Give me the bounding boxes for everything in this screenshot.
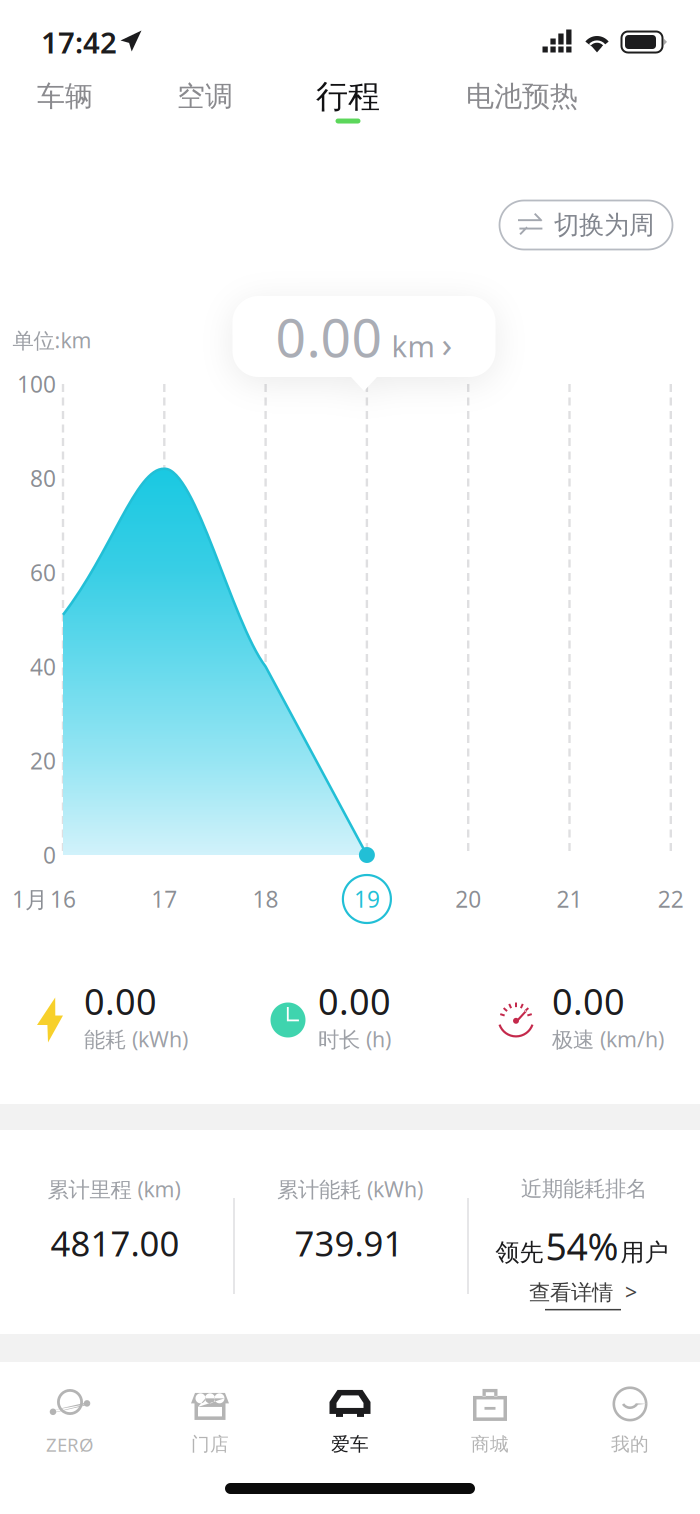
staticText: 爱车 (331, 1433, 369, 1456)
staticText: 20 (30, 746, 56, 776)
staticText: 20 (455, 884, 481, 914)
staticText: 累计能耗 (kWh) (277, 1175, 423, 1203)
button[interactable]: 车辆 (25, 74, 105, 133)
staticText: 0.00 (552, 977, 625, 1025)
staticText: 0 (43, 840, 56, 870)
button[interactable]: 爱车 (280, 1379, 420, 1460)
staticText: 领先 (495, 1238, 543, 1267)
staticText: 能耗 (kWh) (84, 1025, 188, 1053)
staticText: 19 (354, 884, 380, 914)
staticText: 极速 (km/h) (552, 1025, 664, 1053)
staticText: 门店 (191, 1433, 229, 1456)
staticText: 40 (30, 651, 56, 682)
staticText: 18 (253, 884, 279, 914)
staticText: km (391, 326, 434, 365)
staticText: 查看详情 > (529, 1278, 637, 1306)
staticText: 60 (30, 557, 56, 587)
staticText: 4817.00 (50, 1220, 179, 1266)
staticText: 切换为周 (554, 209, 654, 240)
staticText: 时长 (h) (318, 1025, 391, 1053)
staticText: ZERØ (46, 1432, 94, 1457)
staticText: 商城 (471, 1433, 509, 1456)
staticText: 1月 (12, 884, 48, 914)
button[interactable]: 行程 (304, 74, 392, 133)
button[interactable]: 空调 (165, 74, 245, 133)
button[interactable]: 门店 (140, 1379, 280, 1460)
staticText: 16 (50, 884, 76, 914)
staticText: 车辆 (37, 79, 93, 114)
staticText: 空调 (177, 79, 233, 114)
staticText: 累计里程 (km) (47, 1175, 180, 1203)
button[interactable]: 查看详情 > (523, 1272, 643, 1316)
button[interactable]: 0.00 (232, 296, 495, 391)
staticText: 80 (30, 463, 56, 493)
button[interactable]: 切换为周 (499, 200, 672, 249)
staticText: 100 (17, 369, 56, 399)
staticText: 54% (545, 1221, 618, 1271)
staticText: 0.00 (84, 977, 157, 1025)
staticText: 22 (658, 884, 684, 914)
staticText: 用户 (620, 1238, 668, 1267)
staticText: 电池预热 (466, 79, 578, 114)
button[interactable]: 电池预热 (454, 74, 590, 133)
staticText: 我的 (611, 1433, 649, 1456)
staticText: 行程 (316, 77, 380, 116)
staticText: 0.00 (275, 301, 382, 372)
staticText: 21 (556, 884, 582, 914)
staticText: 17 (151, 884, 177, 914)
button[interactable]: 我的 (560, 1379, 700, 1460)
button[interactable]: ZERØ (0, 1378, 140, 1461)
staticText: 单位:km (12, 326, 91, 354)
staticText: 0.00 (318, 977, 391, 1025)
staticText: 近期能耗排名 (521, 1176, 647, 1202)
staticText: › (441, 321, 452, 367)
staticText: 17:42 (41, 22, 117, 61)
button[interactable]: 商城 (420, 1379, 560, 1460)
staticText: 739.91 (294, 1220, 403, 1266)
